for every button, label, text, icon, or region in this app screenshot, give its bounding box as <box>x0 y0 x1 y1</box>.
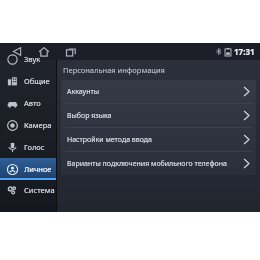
button[interactable]: Система <box>0 180 57 200</box>
button[interactable]: Home <box>35 43 53 60</box>
staticText: Общие <box>24 76 50 86</box>
button[interactable]: Камера <box>0 114 57 136</box>
button[interactable]: Выбор языка <box>61 104 256 127</box>
button[interactable]: Голос <box>0 136 57 158</box>
button[interactable]: Back <box>8 43 26 60</box>
button[interactable]: Авто <box>0 92 57 114</box>
button[interactable]: Общие <box>0 70 57 92</box>
button[interactable]: Личное <box>0 158 57 180</box>
staticText: Персональная информация <box>63 65 165 75</box>
staticText: Выбор языка <box>67 111 112 121</box>
button[interactable]: Аккаунты <box>61 80 256 103</box>
staticText: Камера <box>24 120 52 130</box>
staticText: Система <box>24 185 55 195</box>
staticText: Аккаунты <box>67 87 100 97</box>
button[interactable]: Варианты подключения мобильного телефона <box>61 152 256 175</box>
staticText: Личное <box>24 164 52 174</box>
staticText: Звук <box>24 54 41 64</box>
button[interactable]: Настройки метода ввода <box>61 128 256 151</box>
button[interactable]: Звук <box>0 48 57 70</box>
staticText: Настройки метода ввода <box>67 135 152 145</box>
staticText: Голос <box>24 142 45 152</box>
staticText: 17:31 <box>234 46 255 57</box>
staticText: Варианты подключения мобильного телефона <box>67 159 227 169</box>
staticText: Авто <box>24 98 41 108</box>
button[interactable]: Recent apps <box>62 43 80 60</box>
